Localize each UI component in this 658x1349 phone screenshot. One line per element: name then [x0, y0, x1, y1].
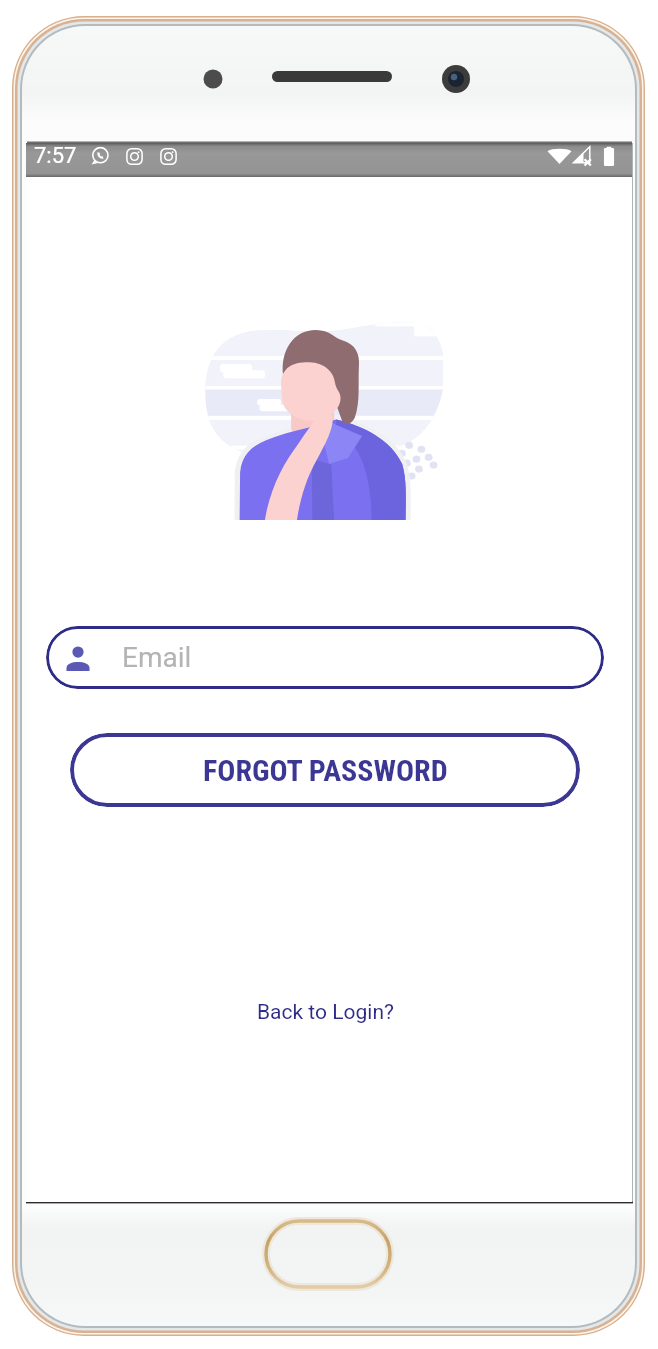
button[interactable]: FORGOT PASSWORD: [70, 733, 580, 807]
button[interactable]: Back to Login?: [245, 991, 406, 1034]
staticText: FORGOT PASSWORD: [203, 753, 448, 788]
staticText: Email: [122, 641, 192, 674]
staticText: 7:57: [34, 143, 77, 169]
button[interactable]: Email: [46, 626, 604, 689]
staticText: Back to Login?: [257, 1000, 394, 1025]
